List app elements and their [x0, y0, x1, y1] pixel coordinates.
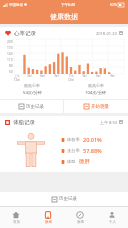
- button[interactable]: 历史记录: [0, 192, 128, 206]
- staticText: 开始测量: [91, 104, 109, 110]
- staticText: 发现: [77, 220, 84, 224]
- staticText: 体脂率: [67, 137, 80, 142]
- staticText: 上午 8:53: [100, 120, 117, 125]
- staticText: 50: [9, 70, 13, 74]
- staticText: 数据: [45, 220, 52, 224]
- staticText: 9时: [54, 74, 59, 78]
- staticText: 6时: [96, 74, 101, 78]
- staticText: 体脂记录: [13, 119, 35, 126]
- staticText: 9时: [110, 74, 115, 78]
- staticText: 3时: [27, 74, 32, 78]
- staticText: 上午 12时: [14, 74, 20, 81]
- staticText: 6时: [40, 74, 45, 78]
- staticText: 水分率: [67, 148, 80, 153]
- button[interactable]: 首页: [0, 207, 32, 228]
- staticText: 57.88%: [83, 147, 102, 154]
- staticText: 110: [7, 58, 13, 62]
- staticText: 历史记录: [26, 104, 44, 110]
- staticText: 62%: [110, 2, 117, 7]
- staticText: 历史记录: [59, 196, 77, 202]
- staticText: 首页: [13, 220, 20, 224]
- staticText: 个人: [109, 220, 116, 224]
- staticText: 体型: [67, 159, 76, 164]
- staticText: 2018-01-23: [96, 31, 117, 36]
- button[interactable]: 数据: [32, 207, 64, 228]
- staticText: 200: [7, 40, 13, 44]
- staticText: 最低心率: [24, 83, 40, 88]
- staticText: 微胖: [79, 158, 90, 165]
- staticText: 104次/分钟: [85, 90, 107, 96]
- button[interactable]: 历史记录: [0, 100, 63, 113]
- staticText: 心率记录: [14, 30, 36, 37]
- staticText: 54次/分钟: [23, 90, 42, 96]
- staticText: 下午6:48: [61, 2, 75, 7]
- staticText: 20.01%: [83, 136, 102, 143]
- staticText: 3时: [82, 74, 87, 78]
- button[interactable]: 开始测量: [64, 100, 128, 113]
- staticText: 140: [7, 52, 13, 56]
- button[interactable]: 个人: [96, 207, 128, 228]
- staticText: 健康数据: [50, 12, 78, 21]
- staticText: 中国电信: [9, 3, 23, 7]
- button[interactable]: 发现: [64, 207, 96, 228]
- staticText: 下午 12时: [68, 74, 74, 81]
- staticText: 80: [9, 64, 13, 68]
- staticText: 170: [7, 46, 13, 50]
- staticText: 最高心率: [88, 83, 104, 88]
